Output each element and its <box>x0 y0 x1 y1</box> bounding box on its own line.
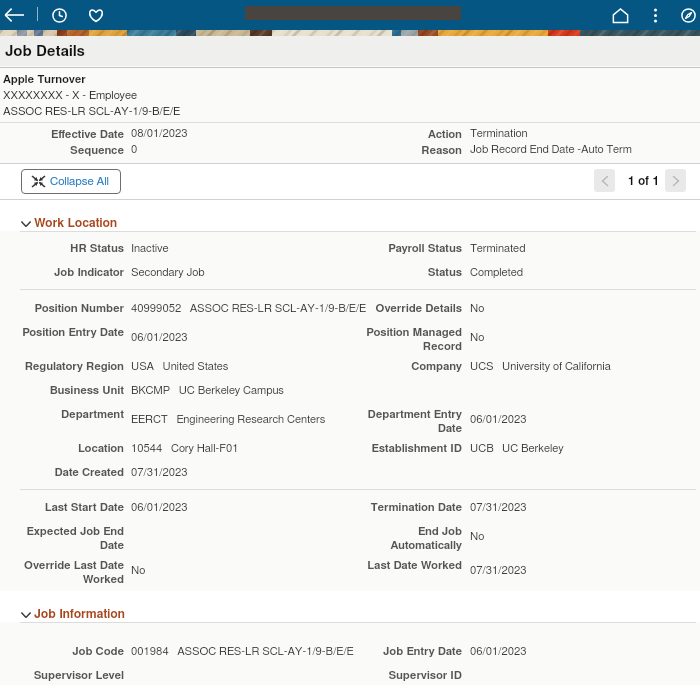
button[interactable]: Collapse All <box>21 169 121 194</box>
staticText: Position Entry Date <box>4 327 124 338</box>
staticText: Action <box>352 129 462 140</box>
staticText: BKCMP UC Berkeley Campus <box>131 385 284 396</box>
staticText: Supervisor ID <box>352 670 462 681</box>
staticText: 08/01/2023 <box>131 128 188 139</box>
staticText: 06/01/2023 <box>131 332 188 343</box>
staticText: Position Number <box>4 303 124 314</box>
staticText: Job Details <box>5 44 85 59</box>
staticText: Status <box>352 267 462 278</box>
button[interactable]: Recently Visited <box>45 0 74 30</box>
staticText: Collapse All <box>50 176 110 188</box>
button[interactable]: Work Location <box>0 200 700 231</box>
staticText: Override Last Date Worked <box>23 560 124 585</box>
staticText: 07/31/2023 <box>470 565 527 576</box>
staticText: Termination Date <box>352 502 462 513</box>
staticText: Date Created <box>4 467 124 478</box>
staticText: 07/31/2023 <box>131 467 188 478</box>
staticText: 001984 ASSOC RES-LR SCL-AY-1/9-B/E/E <box>131 646 354 657</box>
staticText: Location <box>4 443 124 454</box>
staticText: Job Indicator <box>4 267 124 278</box>
staticText: Supervisor Level <box>4 670 124 681</box>
staticText: Job Information <box>34 608 126 620</box>
staticText: No <box>470 531 485 542</box>
staticText: Inactive <box>131 243 169 254</box>
staticText: EERCT Engineering Research Centers <box>131 414 326 425</box>
staticText: Job Record End Date -Auto Term <box>470 144 632 155</box>
staticText: UCS University of California <box>470 361 611 372</box>
staticText: 40999052 ASSOC RES-LR SCL-AY-1/9-B/E/E <box>131 303 367 314</box>
staticText: Business Unit <box>4 385 124 396</box>
staticText: 06/01/2023 <box>470 414 527 425</box>
staticText: UCB UC Berkeley <box>470 443 564 454</box>
staticText: Department <box>4 409 124 420</box>
staticText: Secondary Job <box>131 267 205 278</box>
staticText: 06/01/2023 <box>470 646 527 657</box>
staticText: Payroll Status <box>352 243 462 254</box>
button[interactable]: Favorites <box>81 0 110 30</box>
button[interactable]: Job Information <box>0 591 700 622</box>
staticText: Work Location <box>34 217 118 229</box>
staticText: ASSOC RES-LR SCL-AY-1/9-B/E/E <box>3 106 181 117</box>
staticText: XXXXXXXX - X - Employee <box>3 90 138 101</box>
staticText: Last Date Worked <box>352 560 462 571</box>
staticText: No <box>470 303 485 314</box>
staticText: Reason <box>352 145 462 156</box>
staticText: 0 <box>131 144 138 155</box>
staticText: HR Status <box>4 243 124 254</box>
button[interactable]: Previous row <box>594 169 615 192</box>
staticText: Terminated <box>470 243 526 254</box>
button[interactable]: Next row <box>665 169 686 192</box>
staticText: No <box>131 565 146 576</box>
staticText: Last Start Date <box>4 502 124 513</box>
staticText: Expected Job End Date <box>23 526 124 551</box>
staticText: USA United States <box>131 361 229 372</box>
staticText: Effective Date <box>4 129 124 140</box>
staticText: Job Entry Date <box>352 646 462 657</box>
staticText: Override Details <box>352 303 462 314</box>
staticText: Department Entry Date <box>365 409 462 434</box>
button[interactable]: Home <box>605 0 635 30</box>
staticText: Apple Turnover <box>3 74 86 85</box>
staticText: 1 of 1 <box>628 175 660 187</box>
staticText: Position Managed Record <box>365 327 462 352</box>
staticText: Establishment ID <box>352 443 462 454</box>
staticText: 06/01/2023 <box>131 502 188 513</box>
button[interactable]: Navigator <box>677 0 700 30</box>
staticText: Company <box>352 361 462 372</box>
staticText: Completed <box>470 267 523 278</box>
button[interactable]: Actions menu <box>643 0 667 30</box>
staticText: 07/31/2023 <box>470 502 527 513</box>
staticText: Job Code <box>4 646 124 657</box>
staticText: Termination <box>470 128 528 139</box>
staticText: Regulatory Region <box>4 361 124 372</box>
staticText: 10544 Cory Hall-F01 <box>131 443 239 454</box>
staticText: No <box>470 332 485 343</box>
staticText: End Job Automatically <box>384 526 462 551</box>
button[interactable]: Back <box>0 0 28 30</box>
staticText: Sequence <box>4 145 124 156</box>
